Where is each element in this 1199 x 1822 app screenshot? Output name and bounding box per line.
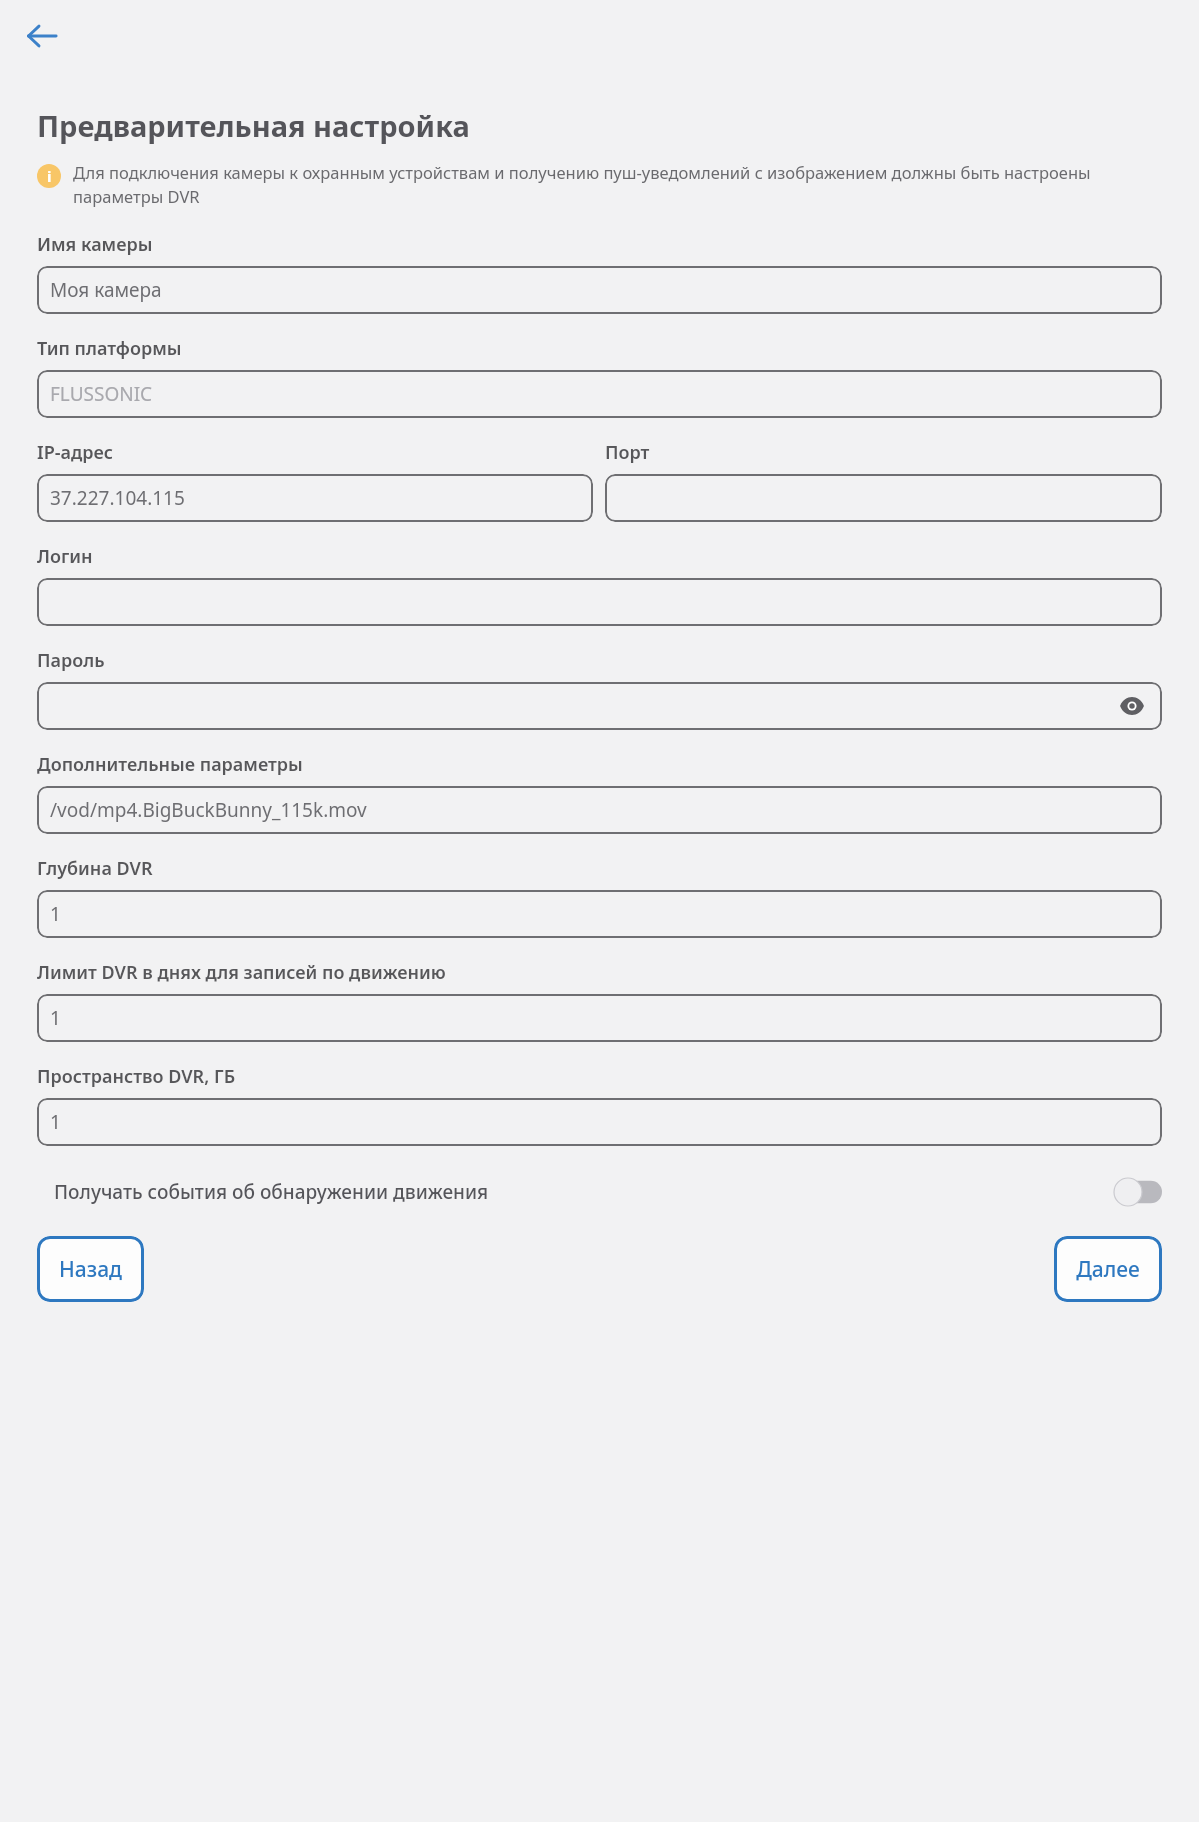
button[interactable]: 1 bbox=[37, 994, 1162, 1042]
button[interactable]: Назад bbox=[14, 8, 70, 64]
button[interactable]: Далее bbox=[1054, 1236, 1162, 1302]
button[interactable]: Назад bbox=[37, 1236, 144, 1302]
button[interactable] bbox=[605, 474, 1162, 522]
button[interactable]: 37.227.104.115 bbox=[37, 474, 593, 522]
staticText: Логин bbox=[37, 544, 93, 569]
staticText: FLUSSONIC bbox=[50, 381, 1149, 407]
staticText: 37.227.104.115 bbox=[50, 485, 580, 511]
button[interactable]: Получать события об обнаружении движения bbox=[37, 1166, 1162, 1218]
button[interactable]: Показать пароль bbox=[1115, 689, 1149, 723]
button[interactable]: 1 bbox=[37, 890, 1162, 938]
staticText: Порт bbox=[605, 440, 1162, 465]
staticText: 1 bbox=[50, 901, 1149, 927]
staticText: Дополнительные параметры bbox=[37, 752, 303, 777]
button[interactable]: 1 bbox=[37, 1098, 1162, 1146]
other: Переключатель событий движения bbox=[1114, 1178, 1162, 1206]
button[interactable]: FLUSSONIC bbox=[37, 370, 1162, 418]
staticText: Для подключения камеры к охранным устрой… bbox=[73, 161, 1162, 208]
staticText: 1 bbox=[50, 1109, 1149, 1135]
staticText: 1 bbox=[50, 1005, 1149, 1031]
button[interactable]: Показать пароль bbox=[37, 682, 1162, 730]
staticText: Глубина DVR bbox=[37, 856, 153, 881]
staticText: Назад bbox=[59, 1255, 122, 1284]
staticText: Тип платформы bbox=[37, 336, 182, 361]
staticText: Получать события об обнаружении движения bbox=[54, 1179, 1114, 1205]
staticText: Лимит DVR в днях для записей по движению bbox=[37, 960, 446, 985]
staticText: Предварительная настройка bbox=[37, 106, 470, 145]
button[interactable]: Моя камера bbox=[37, 266, 1162, 314]
staticText: Пространство DVR, ГБ bbox=[37, 1064, 236, 1089]
staticText: Имя камеры bbox=[37, 232, 153, 257]
staticText: Далее bbox=[1076, 1255, 1140, 1284]
staticText: /vod/mp4.BigBuckBunny_115k.mov bbox=[50, 797, 1149, 823]
staticText: Моя камера bbox=[50, 277, 1149, 303]
staticText: i bbox=[47, 166, 52, 186]
staticText: Пароль bbox=[37, 648, 105, 673]
button[interactable] bbox=[37, 578, 1162, 626]
button[interactable]: /vod/mp4.BigBuckBunny_115k.mov bbox=[37, 786, 1162, 834]
staticText: IP-адрес bbox=[37, 440, 593, 465]
